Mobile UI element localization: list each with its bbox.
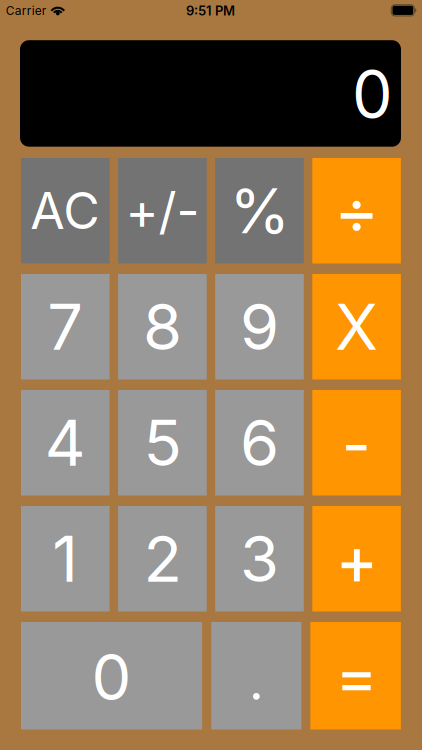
button[interactable]: 5 [118,390,207,495]
staticText: X [335,289,378,365]
button[interactable]: 6 [215,390,304,495]
button[interactable]: 0 [21,622,202,729]
staticText: 7 [47,289,83,365]
staticText: % [229,173,289,248]
button[interactable] [312,506,401,611]
staticText: 5 [143,405,181,481]
button[interactable]: 9 [215,274,304,379]
button[interactable] [312,390,401,495]
button[interactable]: 4 [21,390,110,495]
staticText: 4 [45,405,86,481]
staticText: 2 [143,521,181,597]
button[interactable]: 8 [118,274,207,379]
button[interactable]: AC [21,158,110,263]
staticText: Carrier [6,3,47,18]
button[interactable]: 3 [215,506,304,611]
staticText: +/- [125,180,199,241]
staticText: 9 [240,289,279,365]
button[interactable] [312,158,401,263]
staticText: 3 [240,521,279,597]
staticText: 6 [240,405,279,481]
button[interactable]: 7 [21,274,110,379]
button[interactable] [211,622,301,729]
staticText: 1 [52,521,78,597]
button[interactable]: +/- [118,158,207,263]
button[interactable] [310,622,401,729]
staticText: 0 [352,55,393,133]
staticText: 9:51 PM [186,3,235,19]
button[interactable]: 2 [118,506,207,611]
button[interactable]: % [215,158,304,263]
staticText: 0 [91,639,131,715]
staticText: 8 [143,289,182,365]
button[interactable]: 1 [21,506,110,611]
button[interactable]: X [312,274,401,379]
staticText: AC [30,180,100,241]
